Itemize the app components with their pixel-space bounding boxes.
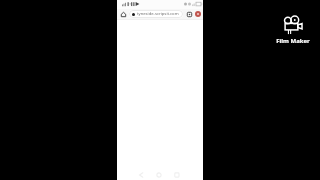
staticText: Film Maker	[276, 37, 310, 45]
button[interactable]: Home	[119, 9, 128, 19]
button[interactable]: tyneside-scripsit.com	[129, 10, 183, 18]
button[interactable]: Recents	[168, 167, 186, 180]
staticText: tyneside-scripsit.com	[137, 11, 179, 17]
button[interactable]: Tabs	[185, 9, 194, 19]
button[interactable]: Home	[150, 167, 168, 180]
button[interactable]: Account	[195, 11, 201, 17]
